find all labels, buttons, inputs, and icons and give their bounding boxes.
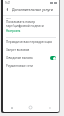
button[interactable]: Периодическая переадресация bbox=[6, 38, 56, 46]
button[interactable]: Настроить bbox=[6, 29, 21, 33]
button[interactable]: Toggle bbox=[50, 56, 56, 60]
button[interactable]: Back bbox=[4, 6, 11, 13]
button[interactable]: Home bbox=[21, 103, 40, 112]
button[interactable]: Ожидание вызова bbox=[6, 54, 56, 62]
button[interactable]: Recents bbox=[3, 103, 21, 112]
staticText: Периодическая переадресация bbox=[6, 40, 56, 44]
button[interactable]: Роуминговые сети bbox=[6, 62, 56, 70]
staticText: Роуминговые сети bbox=[6, 64, 56, 68]
staticText: Ожидание вызова bbox=[6, 56, 50, 60]
staticText: Запрет вызовов bbox=[6, 48, 56, 52]
staticText: МТС bbox=[6, 16, 11, 19]
button[interactable]: Back bbox=[40, 103, 59, 112]
button[interactable]: Запрет вызовов bbox=[6, 46, 56, 54]
staticText: Дополнительные услуги bbox=[12, 7, 53, 12]
staticText: 9:41 bbox=[5, 1, 11, 5]
staticText: Показывать номер карт/цифровой подписи bbox=[6, 20, 44, 28]
